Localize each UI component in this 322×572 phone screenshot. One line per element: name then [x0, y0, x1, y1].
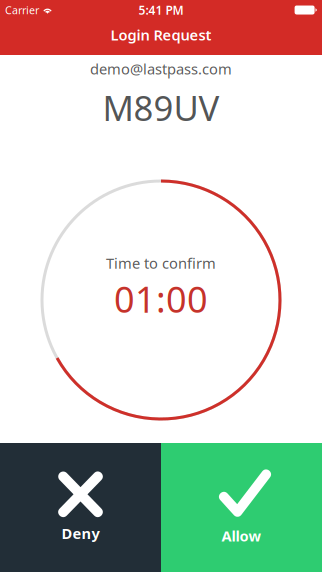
staticText: Carrier [5, 3, 39, 17]
staticText: Login Request [110, 25, 211, 44]
staticText: 01:00 [114, 275, 208, 323]
button[interactable]: Allow [161, 443, 322, 572]
staticText: Allow [221, 526, 261, 545]
staticText: M89UV [102, 84, 219, 130]
button[interactable]: Deny [0, 443, 161, 572]
staticText: 5:41 PM [138, 2, 183, 18]
staticText: demo@lastpass.com [90, 59, 232, 78]
staticText: Time to confirm [106, 253, 216, 273]
staticText: Deny [61, 524, 99, 543]
